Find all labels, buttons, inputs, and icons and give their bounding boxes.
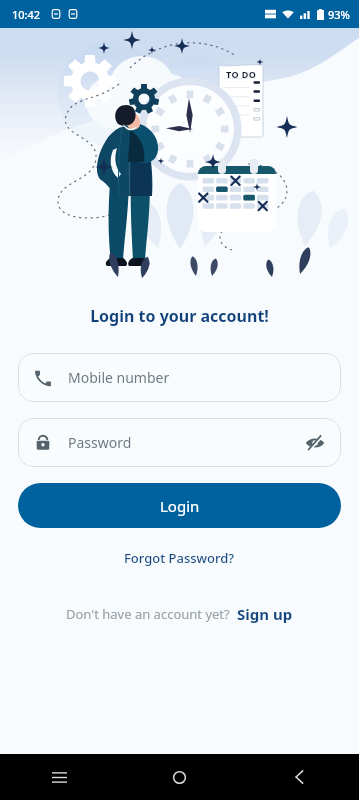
button[interactable]: Login (18, 483, 341, 528)
staticText: Don't have an account yet? (66, 605, 230, 623)
staticText: TO DO (226, 68, 257, 80)
staticText: Sign up (237, 604, 293, 624)
staticText: 93% (328, 7, 350, 22)
staticText: Password (68, 433, 132, 452)
button[interactable]: Sign up (237, 604, 293, 624)
button[interactable]: Mobile number (18, 353, 341, 402)
staticText: 10:42 (12, 7, 41, 22)
button[interactable]: Home (119, 754, 239, 800)
button[interactable]: Recents (0, 754, 119, 800)
button[interactable]: Show password (305, 433, 325, 453)
button[interactable]: Back (239, 754, 359, 800)
button[interactable]: Forgot Password? (116, 545, 243, 571)
staticText: Forgot Password? (124, 549, 235, 567)
staticText: Mobile number (68, 368, 170, 387)
staticText: Login to your account! (0, 305, 359, 327)
button[interactable]: Password (18, 418, 341, 467)
staticText: Login (160, 496, 200, 516)
